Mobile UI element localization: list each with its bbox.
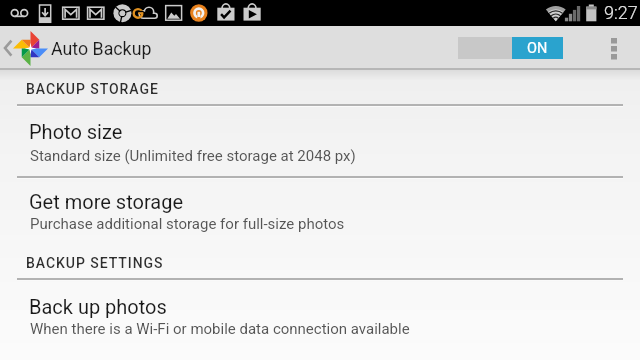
button[interactable]: Auto Backup toggle: [458, 37, 563, 59]
staticText: Auto Backup: [51, 38, 152, 59]
button[interactable]: Photo size: [29, 120, 123, 143]
button[interactable]: Purchase additional storage for full-siz…: [30, 215, 345, 233]
button[interactable]: Get more storage: [29, 190, 184, 213]
button[interactable]: When there is a Wi-Fi or mobile data con…: [30, 320, 410, 338]
staticText: ON: [527, 40, 548, 57]
staticText: 9:27: [604, 2, 638, 23]
button[interactable]: More options: [596, 26, 636, 68]
button[interactable]: Navigate up: [0, 26, 50, 68]
staticText: BACKUP STORAGE: [26, 81, 159, 97]
staticText: BACKUP SETTINGS: [26, 255, 164, 271]
button[interactable]: Back up photos: [29, 295, 167, 318]
button[interactable]: Standard size (Unlimited free storage at…: [30, 147, 356, 165]
